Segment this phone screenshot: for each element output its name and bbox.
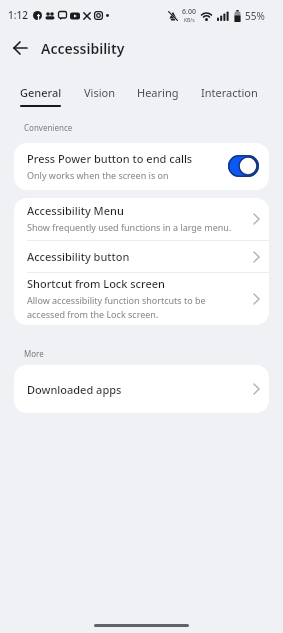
button[interactable]: Accessibility button [14, 241, 269, 272]
staticText: Allow accessibility function shortcuts t… [27, 294, 206, 306]
button[interactable]: Accessibility Menu [14, 198, 269, 240]
button[interactable]: Shortcut from Lock screen [14, 273, 269, 325]
staticText: Accessibility button [27, 249, 130, 264]
button[interactable] [228, 155, 259, 177]
button[interactable]: Hearing [137, 85, 179, 100]
staticText: Press Power button to end calls [27, 151, 193, 166]
staticText: accessed from the Lock screen. [27, 308, 159, 320]
staticText: More [24, 348, 44, 359]
staticText: 6.00 [182, 7, 196, 17]
staticText: General [20, 85, 62, 100]
button[interactable]: Downloaded apps [14, 365, 269, 413]
staticText: Only works when the screen is on [27, 169, 169, 181]
button[interactable]: Interaction [201, 85, 258, 100]
staticText: Shortcut from Lock screen [27, 276, 165, 291]
staticText: 1:12 [8, 8, 28, 22]
staticText: Convenience [24, 122, 73, 133]
button[interactable]: Vision [84, 85, 115, 100]
staticText: Accessibility [41, 39, 125, 58]
staticText: 55% [245, 9, 265, 23]
button[interactable] [13, 41, 28, 55]
button[interactable]: Press Power button to end calls [14, 143, 269, 190]
button[interactable]: General [20, 85, 62, 107]
staticText: Show frequently used functions in a larg… [27, 221, 232, 233]
staticText: Downloaded apps [27, 382, 122, 397]
staticText: KB/s [184, 17, 195, 24]
staticText: Accessibility Menu [27, 203, 124, 218]
